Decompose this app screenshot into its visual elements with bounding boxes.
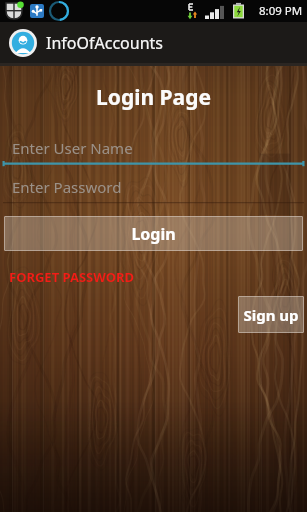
staticText: Login bbox=[131, 223, 176, 245]
staticText: Enter Password bbox=[12, 177, 122, 197]
button[interactable]: Login bbox=[4, 216, 303, 251]
staticText: 8:09 PM bbox=[259, 3, 303, 19]
staticText: Login Page bbox=[96, 83, 211, 112]
button[interactable]: Enter Password bbox=[0, 173, 307, 206]
other: App icon bbox=[9, 29, 37, 57]
staticText: Sign up bbox=[243, 305, 299, 325]
staticText: Enter User Name bbox=[12, 138, 133, 158]
staticText: InfoOfAccounts bbox=[46, 32, 163, 54]
staticText: FORGET PASSWORD bbox=[9, 268, 135, 286]
button[interactable]: Sign up bbox=[238, 296, 304, 333]
button[interactable]: Enter User Name bbox=[0, 134, 307, 167]
button[interactable]: FORGET PASSWORD bbox=[9, 268, 135, 286]
